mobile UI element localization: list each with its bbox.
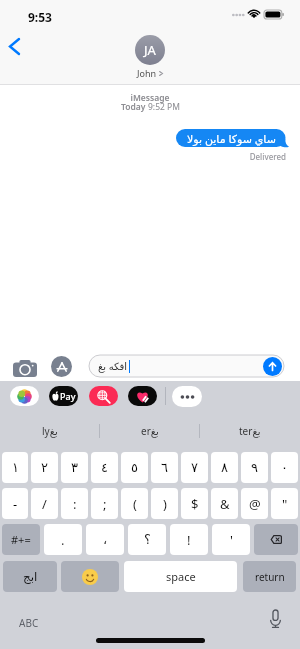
staticText: Pay xyxy=(60,390,76,402)
button[interactable]: Digital Touch xyxy=(128,386,157,406)
button[interactable]: ابج xyxy=(3,561,57,592)
staticText: Today xyxy=(121,101,148,113)
staticText: ! xyxy=(187,531,191,549)
button[interactable]: ١ xyxy=(2,452,28,483)
button[interactable]: ٧ xyxy=(181,452,208,483)
staticText: iMessage xyxy=(0,92,300,104)
button[interactable]: Images xyxy=(89,386,118,406)
button[interactable]: ؟ xyxy=(128,524,166,555)
staticText: ٠ xyxy=(281,460,288,475)
button[interactable]: App Store xyxy=(51,356,72,377)
staticText: space xyxy=(166,569,196,584)
button[interactable]: Backspace xyxy=(254,524,298,555)
staticText: $ xyxy=(191,495,199,513)
staticText: / xyxy=(42,495,47,513)
staticText: : xyxy=(73,495,77,513)
button[interactable]: ) xyxy=(151,488,178,519)
staticText: Delivered xyxy=(0,151,286,162)
button[interactable]: $ xyxy=(181,488,208,519)
button[interactable]: ter‏بغ xyxy=(200,411,300,451)
button[interactable]: JA xyxy=(135,35,165,79)
staticText: " xyxy=(282,495,288,513)
button[interactable]: Dictation xyxy=(266,609,284,629)
staticText: ٣ xyxy=(71,460,78,475)
staticText: ) xyxy=(163,495,167,513)
staticText: ٥ xyxy=(131,460,138,475)
button[interactable]: & xyxy=(211,488,238,519)
button[interactable]: Emoji xyxy=(61,561,119,592)
staticText: & xyxy=(220,495,230,513)
staticText: 9:53 xyxy=(28,9,52,25)
button[interactable]: Back xyxy=(4,33,34,63)
button[interactable]: space xyxy=(124,561,237,592)
button[interactable]: ٠ xyxy=(271,452,298,483)
button[interactable]: ٢ xyxy=(31,452,58,483)
staticText: ٨ xyxy=(221,460,228,475)
button[interactable]: ٥ xyxy=(121,452,148,483)
staticText: ساي سوكا ماين بولا xyxy=(187,131,276,146)
button[interactable]: @ xyxy=(241,488,268,519)
staticText: er‏بغ xyxy=(141,424,159,438)
button[interactable]: ٤ xyxy=(91,452,118,483)
staticText: JA xyxy=(144,41,156,59)
button[interactable]: ٣ xyxy=(61,452,88,483)
staticText: ٤ xyxy=(101,460,108,475)
button[interactable]: ٦ xyxy=(151,452,178,483)
button[interactable]: ( xyxy=(121,488,148,519)
staticText: ؟ xyxy=(144,532,151,547)
button[interactable]: ! xyxy=(170,524,208,555)
button[interactable]: / xyxy=(31,488,58,519)
staticText: - xyxy=(13,495,18,513)
staticText: افكه بغ xyxy=(98,359,128,373)
button[interactable]: " xyxy=(271,488,298,519)
staticText: ( xyxy=(133,495,137,513)
button[interactable]: #+= xyxy=(2,524,40,555)
staticText: ٦ xyxy=(161,460,168,475)
button[interactable]: ABC xyxy=(19,616,39,630)
button[interactable]: Camera xyxy=(12,355,37,377)
staticText: ly‏بغ xyxy=(42,424,58,438)
staticText: ٧ xyxy=(191,460,198,475)
staticText: ، xyxy=(103,532,108,547)
staticText: ٢ xyxy=(41,460,48,475)
staticText: ter‏بغ xyxy=(239,424,261,438)
staticText: 9:52 PM xyxy=(148,101,180,113)
button[interactable]: : xyxy=(61,488,88,519)
staticText: ابج xyxy=(23,570,38,584)
staticText: return xyxy=(255,570,285,584)
staticText: . xyxy=(61,531,65,549)
button[interactable]: - xyxy=(2,488,28,519)
staticText: #+= xyxy=(11,532,31,547)
staticText: John xyxy=(137,67,157,79)
staticText: ١ xyxy=(12,460,19,475)
button[interactable]: ' xyxy=(212,524,250,555)
button[interactable]: ٩ xyxy=(241,452,268,483)
staticText: ' xyxy=(230,531,233,549)
button[interactable]: Send xyxy=(263,357,282,376)
staticText: ٩ xyxy=(251,460,258,475)
button[interactable]: return xyxy=(243,561,296,592)
button[interactable]: ٨ xyxy=(211,452,238,483)
button[interactable]: ، xyxy=(86,524,124,555)
button[interactable]: Apple Pay xyxy=(49,386,78,406)
staticText: @ xyxy=(249,495,261,513)
staticText: ; xyxy=(103,495,107,513)
button[interactable]: . xyxy=(44,524,82,555)
button[interactable]: More xyxy=(172,386,202,407)
button[interactable]: ly‏بغ xyxy=(0,411,100,451)
button[interactable]: er‏بغ xyxy=(100,411,200,451)
button[interactable]: Photos xyxy=(10,386,39,406)
button[interactable]: ; xyxy=(91,488,118,519)
